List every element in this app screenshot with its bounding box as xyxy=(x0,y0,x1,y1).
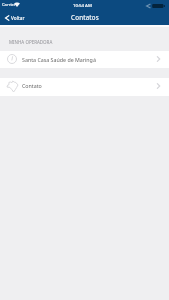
staticText: Voltar xyxy=(11,15,25,21)
staticText: Contato xyxy=(22,82,42,89)
staticText: 10:54 AM xyxy=(73,2,92,8)
staticText: Carrier xyxy=(2,2,16,8)
staticText: MINHA OPERADORA xyxy=(9,39,53,45)
staticText: Santa Casa Saúde de Maringá xyxy=(22,56,96,63)
staticText: Contatos xyxy=(71,13,99,21)
button[interactable]: Voltar xyxy=(0,12,30,25)
other: Abrir Contato xyxy=(157,83,160,89)
button[interactable]: Contato xyxy=(0,78,169,96)
button[interactable]: Santa Casa Saúde de Maringá xyxy=(0,51,169,68)
other: Abrir Santa Casa Saúde de Maringá xyxy=(157,56,160,62)
